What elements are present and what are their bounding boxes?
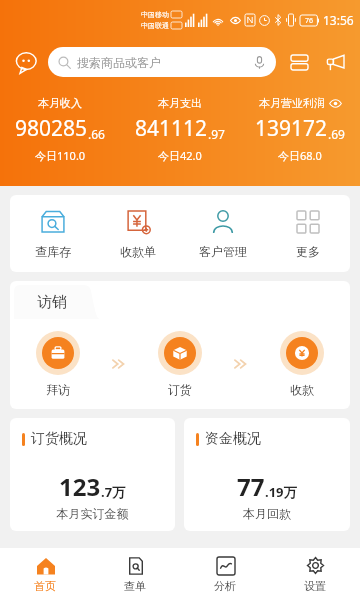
staticText: 76 [305, 16, 314, 26]
button[interactable]: 访销 [14, 285, 100, 319]
staticText: 查库存 [35, 244, 71, 259]
button[interactable]: 设置 [270, 548, 360, 600]
button[interactable]: 资金概况 [184, 418, 350, 531]
staticText: 资金概况 [205, 430, 261, 448]
button[interactable]: 拜访 [10, 331, 106, 397]
button[interactable]: 本月支出 [120, 96, 240, 163]
button[interactable]: 本月营业利润 [240, 96, 360, 163]
button[interactable]: 查单 [90, 548, 180, 600]
staticText: 客户管理 [199, 244, 247, 259]
staticText: 中国移动 [141, 10, 169, 19]
button[interactable]: 消息 [12, 48, 40, 76]
staticText: 收款单 [120, 244, 156, 259]
staticText: 更多 [296, 244, 320, 259]
staticText: .97 [208, 126, 225, 142]
staticText: 13:56 [323, 12, 354, 28]
button[interactable]: 搜索商品或客户 [48, 47, 276, 77]
button[interactable]: 客户管理 [180, 208, 265, 259]
staticText: 订货 [168, 382, 192, 397]
staticText: 首页 [34, 579, 56, 593]
button[interactable]: 扫码 [286, 49, 312, 75]
staticText: 今日110.0 [35, 148, 86, 163]
staticText: 139172 [255, 114, 328, 143]
staticText: 本月收入 [38, 96, 82, 110]
staticText: 今日68.0 [278, 148, 322, 163]
staticText: 收款 [290, 382, 314, 397]
staticText: 订货概况 [31, 430, 87, 448]
button[interactable]: 更多 [265, 208, 350, 259]
staticText: 设置 [304, 579, 326, 593]
button[interactable]: 订货 [132, 331, 228, 397]
staticText: 搜索商品或客户 [77, 55, 161, 70]
staticText: 980285 [15, 114, 88, 143]
staticText: .19万 [265, 483, 297, 501]
button[interactable]: 查库存 [10, 208, 95, 259]
button[interactable]: 收款 [254, 331, 350, 397]
button[interactable]: 收款单 [95, 208, 180, 259]
staticText: 分析 [214, 579, 236, 593]
staticText: .7万 [101, 483, 126, 501]
staticText: 123 [59, 470, 101, 503]
staticText: .69 [328, 126, 345, 142]
staticText: 本月实订金额 [10, 506, 175, 521]
button[interactable]: 订货概况 [10, 418, 175, 531]
button[interactable]: 本月收入 [0, 96, 120, 163]
staticText: 中国联通 [141, 21, 169, 30]
staticText: 77 [237, 470, 265, 503]
staticText: 拜访 [46, 382, 70, 397]
staticText: 本月营业利润 [259, 96, 325, 110]
staticText: 本月回款 [184, 506, 350, 521]
staticText: 查单 [124, 579, 146, 593]
staticText: .66 [88, 126, 105, 142]
staticText: 本月支出 [158, 96, 202, 110]
staticText: 访销 [37, 293, 67, 312]
button[interactable]: 首页 [0, 548, 90, 600]
staticText: 841112 [135, 114, 208, 143]
staticText: 今日42.0 [158, 148, 202, 163]
button[interactable]: 分析 [180, 548, 270, 600]
button[interactable]: 公告 [322, 49, 348, 75]
